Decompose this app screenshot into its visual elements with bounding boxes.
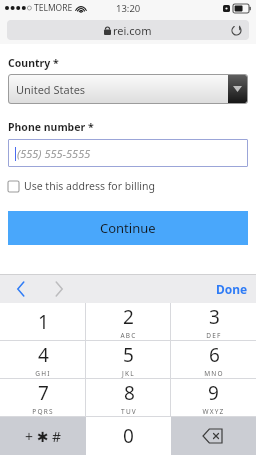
staticText: 8 [124, 380, 135, 406]
button[interactable]: 8 [86, 379, 171, 416]
button[interactable]: Continue [8, 211, 248, 245]
button[interactable]: Backspace [171, 417, 256, 455]
button[interactable]: Reload [229, 23, 243, 37]
staticText: PQRS [32, 407, 54, 416]
staticText: 9 [208, 380, 219, 406]
staticText: United States [16, 82, 86, 97]
staticText: JKL [122, 369, 135, 378]
button[interactable]: rei.com [7, 20, 249, 40]
button[interactable]: + ✱ # [0, 417, 86, 455]
button[interactable]: 1 [0, 303, 86, 340]
staticText: 6 [209, 342, 220, 368]
staticText: TUV [121, 407, 137, 416]
staticText: TELMORE [34, 2, 73, 14]
staticText: + ✱ # [25, 427, 62, 446]
button[interactable]: Next field [48, 277, 70, 301]
button[interactable]: Done [216, 281, 248, 297]
button[interactable]: 9 [171, 379, 256, 416]
staticText: 13:20 [116, 2, 141, 15]
staticText: 3 [209, 304, 220, 330]
button[interactable]: 4 [0, 341, 86, 378]
button[interactable]: 5 [86, 341, 171, 378]
staticText: Phone number * [8, 120, 94, 134]
staticText: rei.com [113, 23, 152, 38]
staticText: 2 [123, 304, 134, 330]
staticText: MNO [204, 369, 224, 378]
staticText: 0 [123, 423, 134, 449]
button[interactable]: Previous field [10, 277, 32, 301]
button[interactable]: 2 [86, 303, 171, 340]
staticText: DEF [206, 331, 222, 340]
staticText: 7 [38, 380, 49, 406]
staticText: WXYZ [202, 407, 225, 416]
button[interactable]: 7 [0, 379, 86, 416]
staticText: 4 [38, 342, 49, 368]
staticText: Country * [8, 56, 59, 70]
staticText: (555) 555-5555 [17, 146, 91, 161]
button[interactable]: (555) 555-5555 [8, 139, 248, 167]
staticText: ABC [120, 331, 137, 340]
button[interactable]: Use this address for billing [8, 179, 248, 193]
staticText: Use this address for billing [24, 179, 156, 193]
button[interactable]: 0 [86, 417, 171, 455]
button[interactable]: United States [8, 74, 248, 104]
button[interactable]: 6 [171, 341, 256, 378]
staticText: Done [216, 281, 248, 297]
staticText: Continue [100, 219, 156, 237]
staticText: 1 [38, 309, 49, 335]
staticText: 5 [123, 342, 134, 368]
staticText: GHI [35, 369, 51, 378]
button[interactable]: 3 [171, 303, 256, 340]
